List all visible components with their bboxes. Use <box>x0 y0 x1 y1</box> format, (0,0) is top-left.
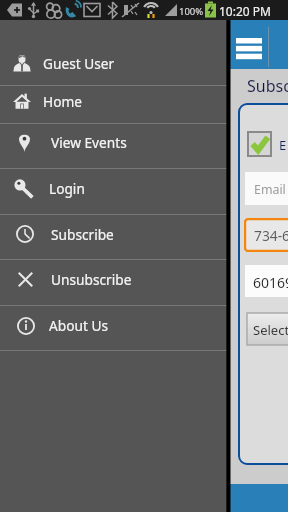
button[interactable]: Subscribe <box>0 214 227 259</box>
staticText: Subscribe <box>247 75 288 97</box>
staticText: 10:20 PM <box>219 3 271 19</box>
staticText: E <box>279 136 287 154</box>
staticText: About Us <box>49 316 108 335</box>
staticText: 100% <box>179 5 204 18</box>
button[interactable]: Guest User <box>0 40 227 85</box>
staticText: Home <box>43 92 82 111</box>
staticText: 60169 <box>253 273 288 292</box>
staticText: Unsubscribe <box>51 270 132 289</box>
button[interactable]: About Us <box>0 305 227 351</box>
button[interactable]: Login <box>0 168 227 214</box>
staticText: Guest User <box>43 54 115 73</box>
staticText: View Events <box>51 133 127 152</box>
staticText: 734-63 <box>254 226 288 245</box>
button[interactable]: Select <box>247 313 288 345</box>
staticText: Email <box>254 181 286 198</box>
button[interactable]: View Events <box>0 123 227 168</box>
button[interactable]: Home <box>0 85 227 123</box>
button[interactable]: Unsubscribe <box>0 259 227 305</box>
staticText: Select <box>253 321 288 339</box>
staticText: Login <box>49 179 85 198</box>
button[interactable]: Open navigation drawer <box>236 38 262 59</box>
staticText: Subscribe <box>51 225 114 244</box>
